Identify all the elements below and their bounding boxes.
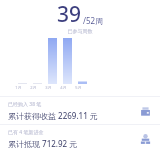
staticText: 已有 4 笔新进金 <box>8 129 44 136</box>
staticText: 1月 <box>14 85 23 90</box>
staticText: 累计抵现 712.92 元 <box>8 138 78 149</box>
staticText: 39 <box>57 0 82 28</box>
button[interactable]: 已有 4 笔新进金 <box>0 125 160 152</box>
staticText: 4月 <box>59 85 68 90</box>
staticText: 5月 <box>74 85 83 90</box>
staticText: 3月 <box>44 85 53 90</box>
button[interactable]: 已经购入 38 笔 <box>0 97 160 124</box>
staticText: 累计获得收益 2269.11 元 <box>8 110 98 121</box>
staticText: 2月 <box>29 85 38 90</box>
button[interactable]: Earnings detail <box>138 104 152 118</box>
staticText: 已参与周数 <box>0 28 160 34</box>
staticText: /52周 <box>83 15 104 26</box>
button[interactable]: Redeem detail <box>138 132 152 146</box>
staticText: 已经购入 38 笔 <box>8 101 42 108</box>
